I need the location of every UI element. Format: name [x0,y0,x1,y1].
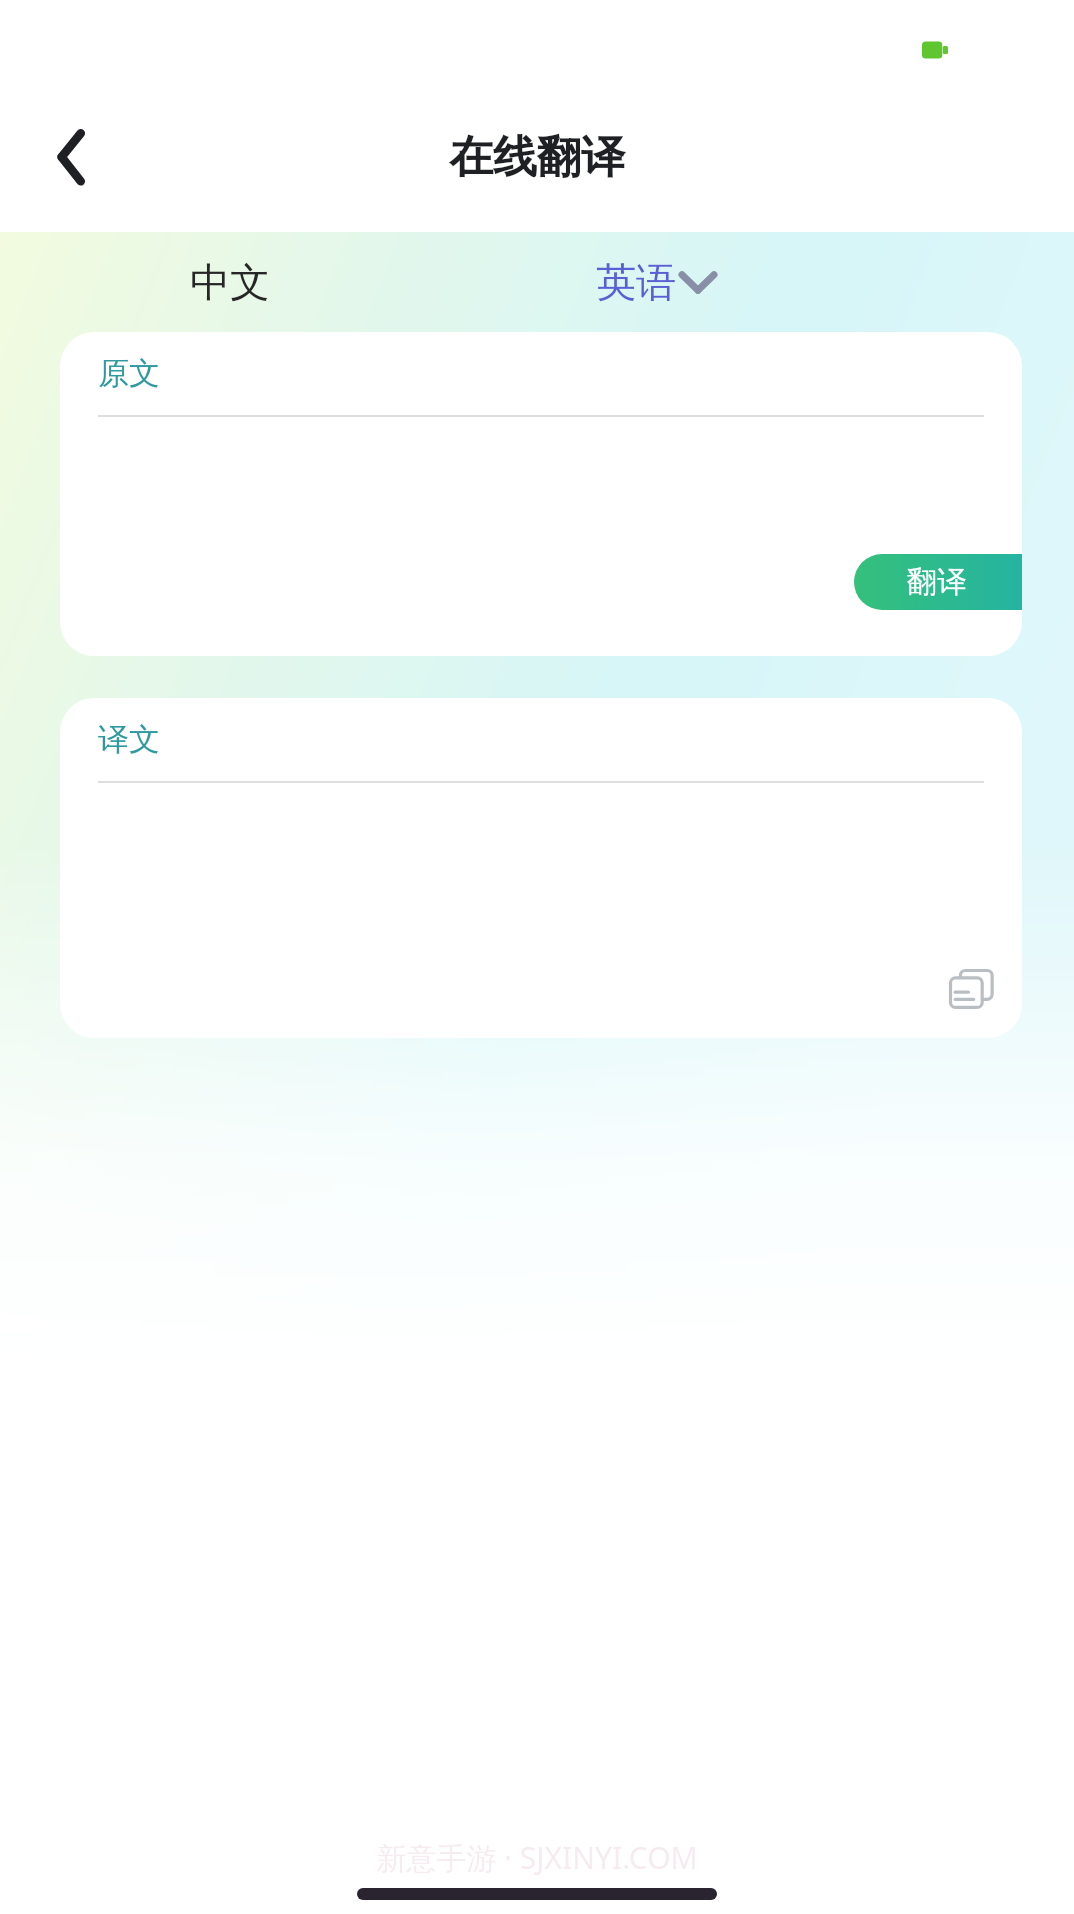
staticText: 英语 [596,257,676,307]
staticText: 在线翻译 [449,130,625,185]
staticText: 翻译 [907,563,967,601]
button[interactable]: 英语 [596,257,718,307]
button[interactable]: 中文 [190,257,270,307]
button[interactable]: 翻译 [854,554,1022,610]
staticText: 新意手游 · SJXINYI.COM [376,1837,698,1878]
staticText: 原文 [98,354,160,393]
button[interactable]: Back [24,109,120,205]
staticText: 中文 [190,257,270,307]
button[interactable]: Copy [936,954,1006,1024]
staticText: 译文 [98,720,160,759]
